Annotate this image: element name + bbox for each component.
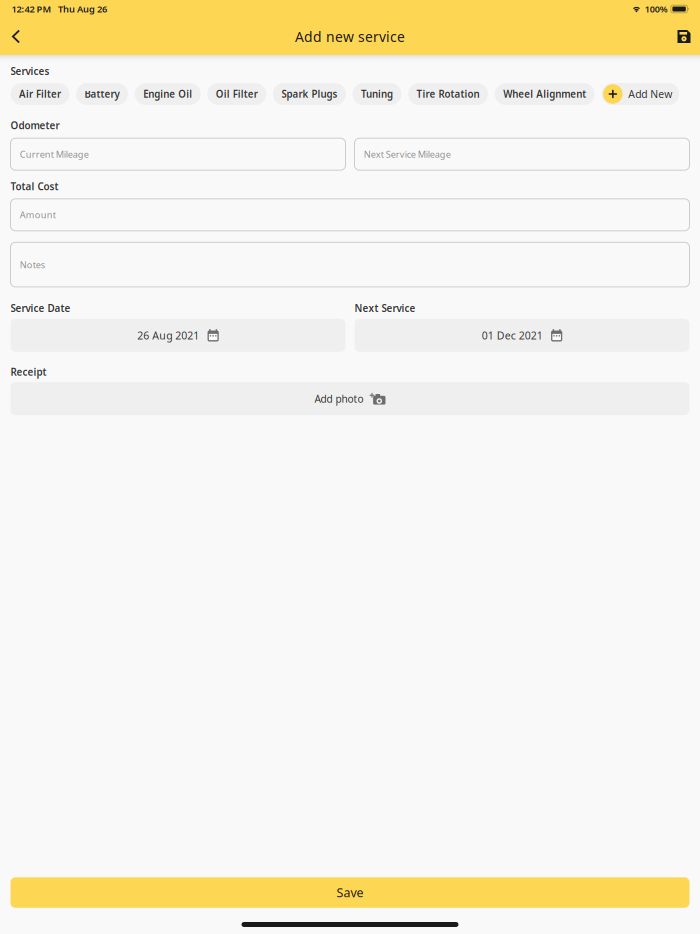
staticText: Oil Filter [216, 87, 258, 101]
staticText: Total Cost [10, 180, 58, 193]
button[interactable]: Back [2, 21, 30, 51]
staticText: Odometer [10, 119, 59, 132]
button[interactable]: Save service [670, 21, 698, 51]
button[interactable]: Add photo [10, 382, 689, 415]
button[interactable]: Next Service Mileage [354, 138, 689, 170]
button[interactable]: 01 Dec 2021 [354, 319, 689, 352]
staticText: Add New [628, 87, 672, 101]
staticText: 26 Aug 2021 [137, 328, 199, 342]
staticText: Amount [20, 208, 56, 221]
staticText: Receipt [10, 365, 46, 379]
staticText: 01 Dec 2021 [482, 328, 543, 342]
button[interactable]: Amount [10, 199, 689, 231]
staticText: Tire Rotation [417, 87, 480, 101]
staticText: Save [336, 884, 363, 901]
staticText: Notes [20, 258, 45, 271]
staticText: Spark Plugs [281, 87, 337, 101]
button[interactable]: Current Mileage [10, 138, 345, 170]
staticText: Battery [85, 87, 120, 101]
button[interactable]: Add New [601, 83, 679, 105]
staticText: Engine Oil [143, 87, 192, 101]
button[interactable]: Notes [10, 242, 689, 287]
button[interactable]: Save [10, 877, 689, 908]
button[interactable]: 26 Aug 2021 [10, 319, 345, 352]
staticText: Service Date [10, 301, 70, 315]
staticText: Tuning [361, 87, 393, 101]
staticText: 12:42 PM [11, 3, 51, 15]
staticText: Next Service [354, 301, 415, 315]
staticText: Services [10, 64, 49, 78]
button[interactable]: Engine Oil [135, 83, 201, 105]
button[interactable]: Tire Rotation [408, 83, 488, 105]
button[interactable]: Battery [76, 83, 128, 105]
staticText: Current Mileage [20, 148, 89, 160]
button[interactable]: Spark Plugs [273, 83, 346, 105]
button[interactable]: Tuning [352, 83, 401, 105]
button[interactable]: Oil Filter [207, 83, 266, 105]
staticText: Next Service Mileage [364, 148, 451, 160]
staticText: Add photo [314, 392, 363, 406]
staticText: Thu Aug 26 [58, 3, 107, 15]
staticText: Air Filter [19, 87, 61, 101]
staticText: Wheel Alignment [503, 87, 586, 101]
staticText: Add new service [295, 27, 405, 46]
staticText: 100% [645, 3, 668, 15]
button[interactable]: Wheel Alignment [495, 83, 595, 105]
button[interactable]: Air Filter [10, 83, 69, 105]
